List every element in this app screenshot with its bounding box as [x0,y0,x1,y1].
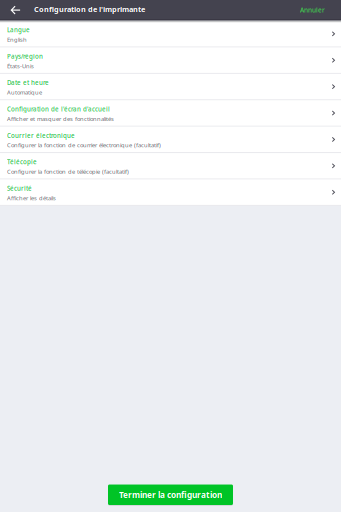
staticText: Automatique [7,88,42,96]
button[interactable]: Terminer la configuration [108,484,233,505]
staticText: Courrier électronique [7,131,75,140]
staticText: English [7,36,27,43]
staticText: Afficher et masquer des fonctionnalités [7,115,114,123]
staticText: Pays/région [7,52,43,60]
staticText: Configurer la fonction de télécopie (fac… [7,168,129,175]
button[interactable]: Langue [0,21,341,47]
button[interactable]: Pays/région [0,47,341,74]
staticText: Configurer la fonction de courrier élect… [7,141,161,149]
button[interactable]: Courrier électronique [0,127,341,153]
staticText: Langue [7,26,30,34]
staticText: Sécurité [7,184,32,192]
staticText: États-Unis [7,62,34,70]
button[interactable]: Sécurité [0,179,341,206]
button[interactable]: Back [5,0,26,20]
staticText: Configuration de l'imprimante [34,4,145,14]
button[interactable]: Configuration de l'écran d'accueil [0,100,341,127]
staticText: Annuler [300,6,325,14]
staticText: Configuration de l'écran d'accueil [7,105,110,113]
staticText: Télécopie [7,158,37,166]
staticText: Date et heure [7,78,49,87]
button[interactable]: Annuler [292,0,333,20]
staticText: Afficher les détails [7,194,56,202]
staticText: Terminer la configuration [119,489,222,500]
button[interactable]: Date et heure [0,74,341,100]
button[interactable]: Télécopie [0,153,341,179]
